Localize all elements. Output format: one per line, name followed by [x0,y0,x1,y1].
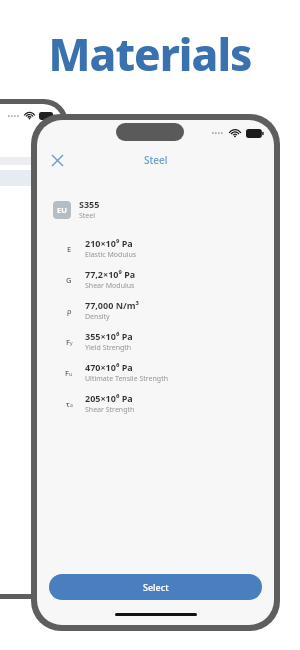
staticText: E [67,244,72,254]
button[interactable]: E [37,233,274,264]
staticText: Steel [79,211,96,221]
button[interactable]: Select [49,574,262,600]
staticText: 355×10⁶ Pa [85,330,133,342]
staticText: a [70,402,73,409]
button[interactable]: ρ [37,295,274,326]
button[interactable]: G [37,264,274,295]
staticText: G [66,275,72,285]
staticText: Elastic Modulus [85,250,137,260]
staticText: EU [57,205,67,215]
staticText: F [65,368,69,378]
button[interactable]: EU [37,196,274,223]
staticText: 77,000 N/m³ [85,299,139,311]
button[interactable]: Close [46,149,68,171]
staticText: Yield Strength [85,343,132,353]
staticText: ρ [67,306,72,316]
button[interactable]: F [37,357,274,388]
staticText: Shear Strength [85,405,135,415]
staticText: Shear Modulus [85,281,135,291]
staticText: y [70,340,73,347]
staticText: Density [85,312,110,322]
staticText: 470×10⁶ Pa [85,361,133,373]
button[interactable]: τ [37,388,274,419]
staticText: u [69,371,73,378]
button[interactable]: F [37,326,274,357]
staticText: 205×10⁶ Pa [85,392,133,404]
staticText: 77,2×10⁹ Pa [85,268,136,280]
staticText: τ [66,399,70,409]
staticText: Steel [144,153,168,167]
staticText: Ultimate Tensile Strength [85,374,168,384]
staticText: F [66,337,70,347]
button[interactable]: Other [0,170,63,186]
staticText: Select [143,581,169,593]
staticText: Materials [0,24,300,84]
staticText: S355 [79,198,100,210]
staticText: 210×10⁹ Pa [85,237,133,249]
